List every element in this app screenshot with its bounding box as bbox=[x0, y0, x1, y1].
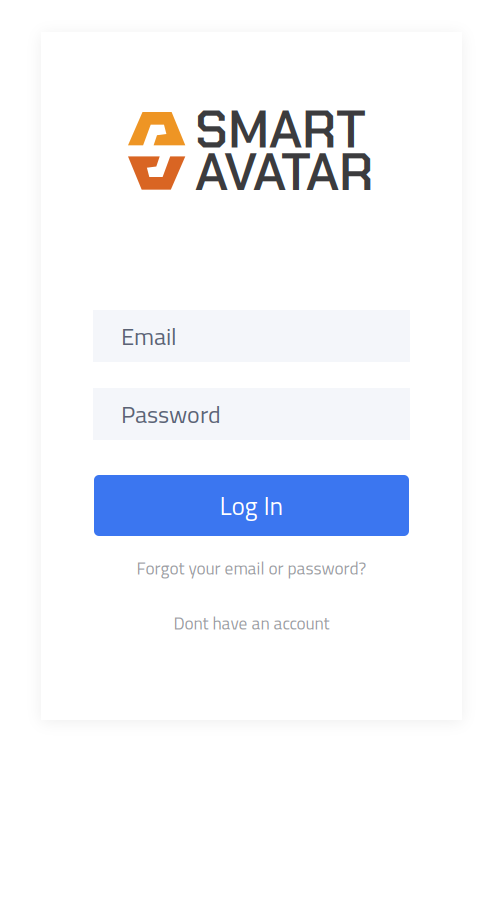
button[interactable]: Password bbox=[93, 388, 410, 440]
button[interactable]: Log In bbox=[94, 475, 409, 536]
staticText: Log In bbox=[219, 486, 283, 525]
button[interactable]: Forgot your email or password? bbox=[101, 550, 401, 586]
staticText: Email bbox=[121, 318, 177, 354]
staticText: AVATAR bbox=[195, 139, 374, 206]
button[interactable]: Dont have an account bbox=[131, 608, 371, 638]
staticText: Password bbox=[121, 396, 221, 432]
staticText: Dont have an account bbox=[173, 610, 329, 636]
staticText: Forgot your email or password? bbox=[136, 555, 366, 581]
staticText: SMART bbox=[195, 96, 366, 164]
button[interactable]: Email bbox=[93, 310, 410, 362]
